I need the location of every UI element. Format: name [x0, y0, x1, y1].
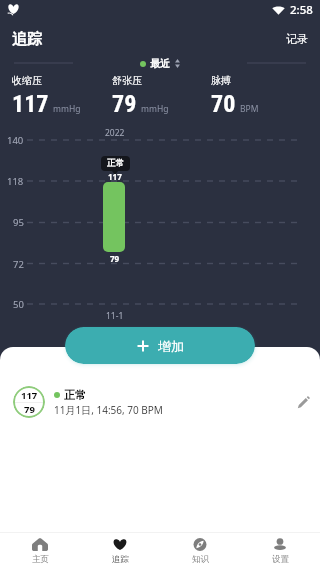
- staticText: 设置: [272, 554, 289, 565]
- staticText: 117: [21, 389, 38, 402]
- staticText: 72: [13, 258, 24, 270]
- staticText: 11月1日, 14:56, 70 BPM: [54, 403, 163, 417]
- staticText: 正常: [64, 388, 86, 402]
- staticText: 正常: [107, 158, 124, 169]
- staticText: 记录: [286, 32, 308, 46]
- button[interactable]: 设置: [240, 533, 320, 565]
- button[interactable]: 记录: [274, 28, 320, 50]
- staticText: 增加: [158, 338, 184, 354]
- staticText: 79: [112, 90, 137, 118]
- button[interactable]: 最近: [140, 57, 180, 70]
- staticText: 79: [24, 403, 35, 416]
- staticText: 脉搏: [211, 74, 231, 87]
- staticText: 95: [13, 216, 24, 228]
- staticText: 117: [12, 90, 49, 118]
- staticText: BPM: [240, 103, 259, 115]
- staticText: 追踪: [112, 554, 129, 565]
- staticText: 70: [211, 90, 236, 118]
- button[interactable]: 117: [0, 383, 320, 421]
- staticText: 79: [110, 253, 120, 264]
- staticText: mmHg: [141, 103, 169, 115]
- staticText: 2022: [105, 127, 125, 139]
- staticText: 知识: [192, 554, 209, 565]
- staticText: 收缩压: [12, 74, 42, 87]
- staticText: 50: [13, 298, 24, 310]
- staticText: 最近: [150, 57, 170, 70]
- button[interactable]: Edit: [291, 390, 315, 414]
- staticText: 追踪: [12, 30, 42, 49]
- staticText: 117: [108, 171, 122, 182]
- button[interactable]: 增加: [65, 327, 255, 364]
- staticText: 11-1: [106, 310, 124, 322]
- staticText: 2:58: [290, 2, 313, 18]
- button[interactable]: 知识: [160, 533, 240, 565]
- staticText: mmHg: [53, 103, 81, 115]
- staticText: 主页: [32, 554, 49, 565]
- staticText: 118: [7, 175, 24, 187]
- button[interactable]: 追踪: [80, 533, 160, 565]
- button[interactable]: 主页: [0, 533, 80, 565]
- staticText: 140: [7, 134, 24, 146]
- staticText: 舒张压: [112, 74, 142, 87]
